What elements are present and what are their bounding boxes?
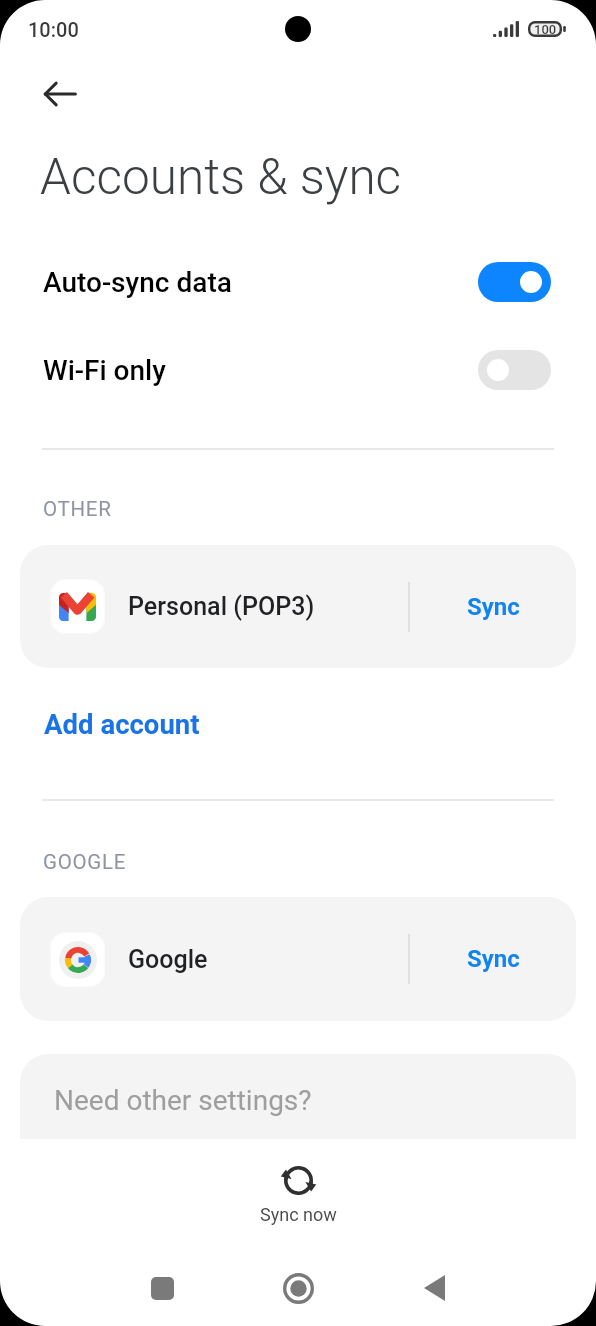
staticText: Sync <box>467 945 520 973</box>
staticText: Need other settings? <box>54 1084 312 1117</box>
staticText: Accounts & sync <box>40 148 402 206</box>
staticText: Wi-Fi only <box>43 354 166 387</box>
button[interactable]: Add account <box>32 700 212 748</box>
button[interactable]: Personal (POP3) <box>20 545 408 668</box>
button[interactable]: Google <box>20 897 408 1021</box>
staticText: Auto-sync data <box>43 266 232 299</box>
staticText: OTHER <box>43 497 112 521</box>
staticText: Sync <box>467 593 520 621</box>
staticText: Add account <box>44 708 200 740</box>
button[interactable]: Sync <box>410 897 576 1021</box>
staticText: Personal (POP3) <box>128 592 315 621</box>
button[interactable]: Auto-sync data <box>0 242 596 322</box>
button[interactable]: Sync now <box>230 1160 367 1231</box>
staticText: 10:00 <box>28 18 79 41</box>
button[interactable]: Sync <box>410 545 576 668</box>
button[interactable]: Back <box>402 1256 466 1320</box>
staticText: Sync now <box>260 1204 337 1225</box>
button[interactable]: Need other settings? <box>20 1054 576 1139</box>
button[interactable]: Home <box>266 1256 330 1320</box>
staticText: 100 <box>534 22 557 37</box>
button[interactable]: Wi-Fi only <box>0 330 596 410</box>
staticText: Google <box>128 945 208 974</box>
button[interactable]: Back <box>31 65 89 123</box>
button[interactable]: Recents <box>130 1256 194 1320</box>
staticText: GOOGLE <box>43 850 127 874</box>
